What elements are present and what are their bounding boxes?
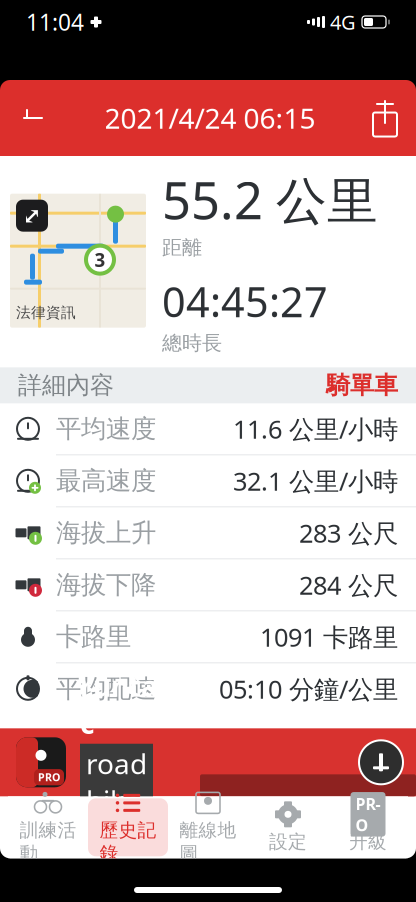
staticText: 歷史記錄 [99, 819, 156, 865]
button[interactable]: Share [360, 93, 410, 143]
button[interactable]: Runtastic Road Bike PRO advertisement [0, 728, 416, 796]
staticText: 平均速度 [56, 413, 156, 444]
button[interactable]: 訓練活動 [8, 798, 88, 856]
staticText: 05:10 分鐘/公里 [219, 672, 398, 706]
button[interactable]: 離線地圖 [168, 798, 248, 856]
staticText: 詳細內容 [18, 371, 114, 400]
staticText: 海拔下降 [56, 569, 156, 600]
button[interactable]: Back [6, 93, 60, 143]
staticText: 法律資訊 [16, 304, 76, 322]
button[interactable]: Map [10, 194, 146, 328]
staticText: 283 公尺 [299, 516, 398, 550]
staticText: 11:04 [26, 7, 84, 37]
staticText: 訓練活動 [19, 819, 76, 865]
staticText: PRO [38, 770, 60, 784]
staticText: 最高速度 [56, 465, 156, 496]
staticText: PRO [355, 793, 380, 836]
staticText: 平均配速 [56, 673, 156, 704]
button[interactable]: PRO [328, 798, 408, 856]
staticText: road bike PRO [86, 745, 147, 856]
staticText: 2021/4/24 06:15 [104, 99, 315, 137]
staticText: 卡路里 [56, 621, 131, 652]
staticText: 1091 卡路里 [260, 620, 398, 654]
staticText: 設定 [269, 830, 307, 853]
staticText: 距離 [162, 235, 202, 260]
staticText: 總時長 [162, 331, 222, 355]
staticText: 海拔上升 [56, 517, 156, 548]
staticText: 升級 [349, 830, 387, 853]
staticText: 3 [94, 247, 105, 272]
staticText: 離線地圖 [179, 819, 236, 865]
button[interactable]: 歷史記錄 [88, 798, 168, 856]
staticText: ⤢ [22, 203, 41, 229]
staticText: 騎單車 [326, 371, 398, 400]
staticText: 55.2 公里 [162, 166, 378, 233]
button[interactable]: 設定 [248, 798, 328, 856]
staticText: 284 公尺 [299, 568, 398, 602]
staticText: 11.6 公里/小時 [233, 412, 398, 446]
staticText: runtastic [80, 667, 201, 742]
staticText: 32.1 公里/小時 [233, 464, 398, 498]
staticText: 4G [330, 9, 356, 35]
staticText: 04:45:27 [162, 274, 328, 329]
